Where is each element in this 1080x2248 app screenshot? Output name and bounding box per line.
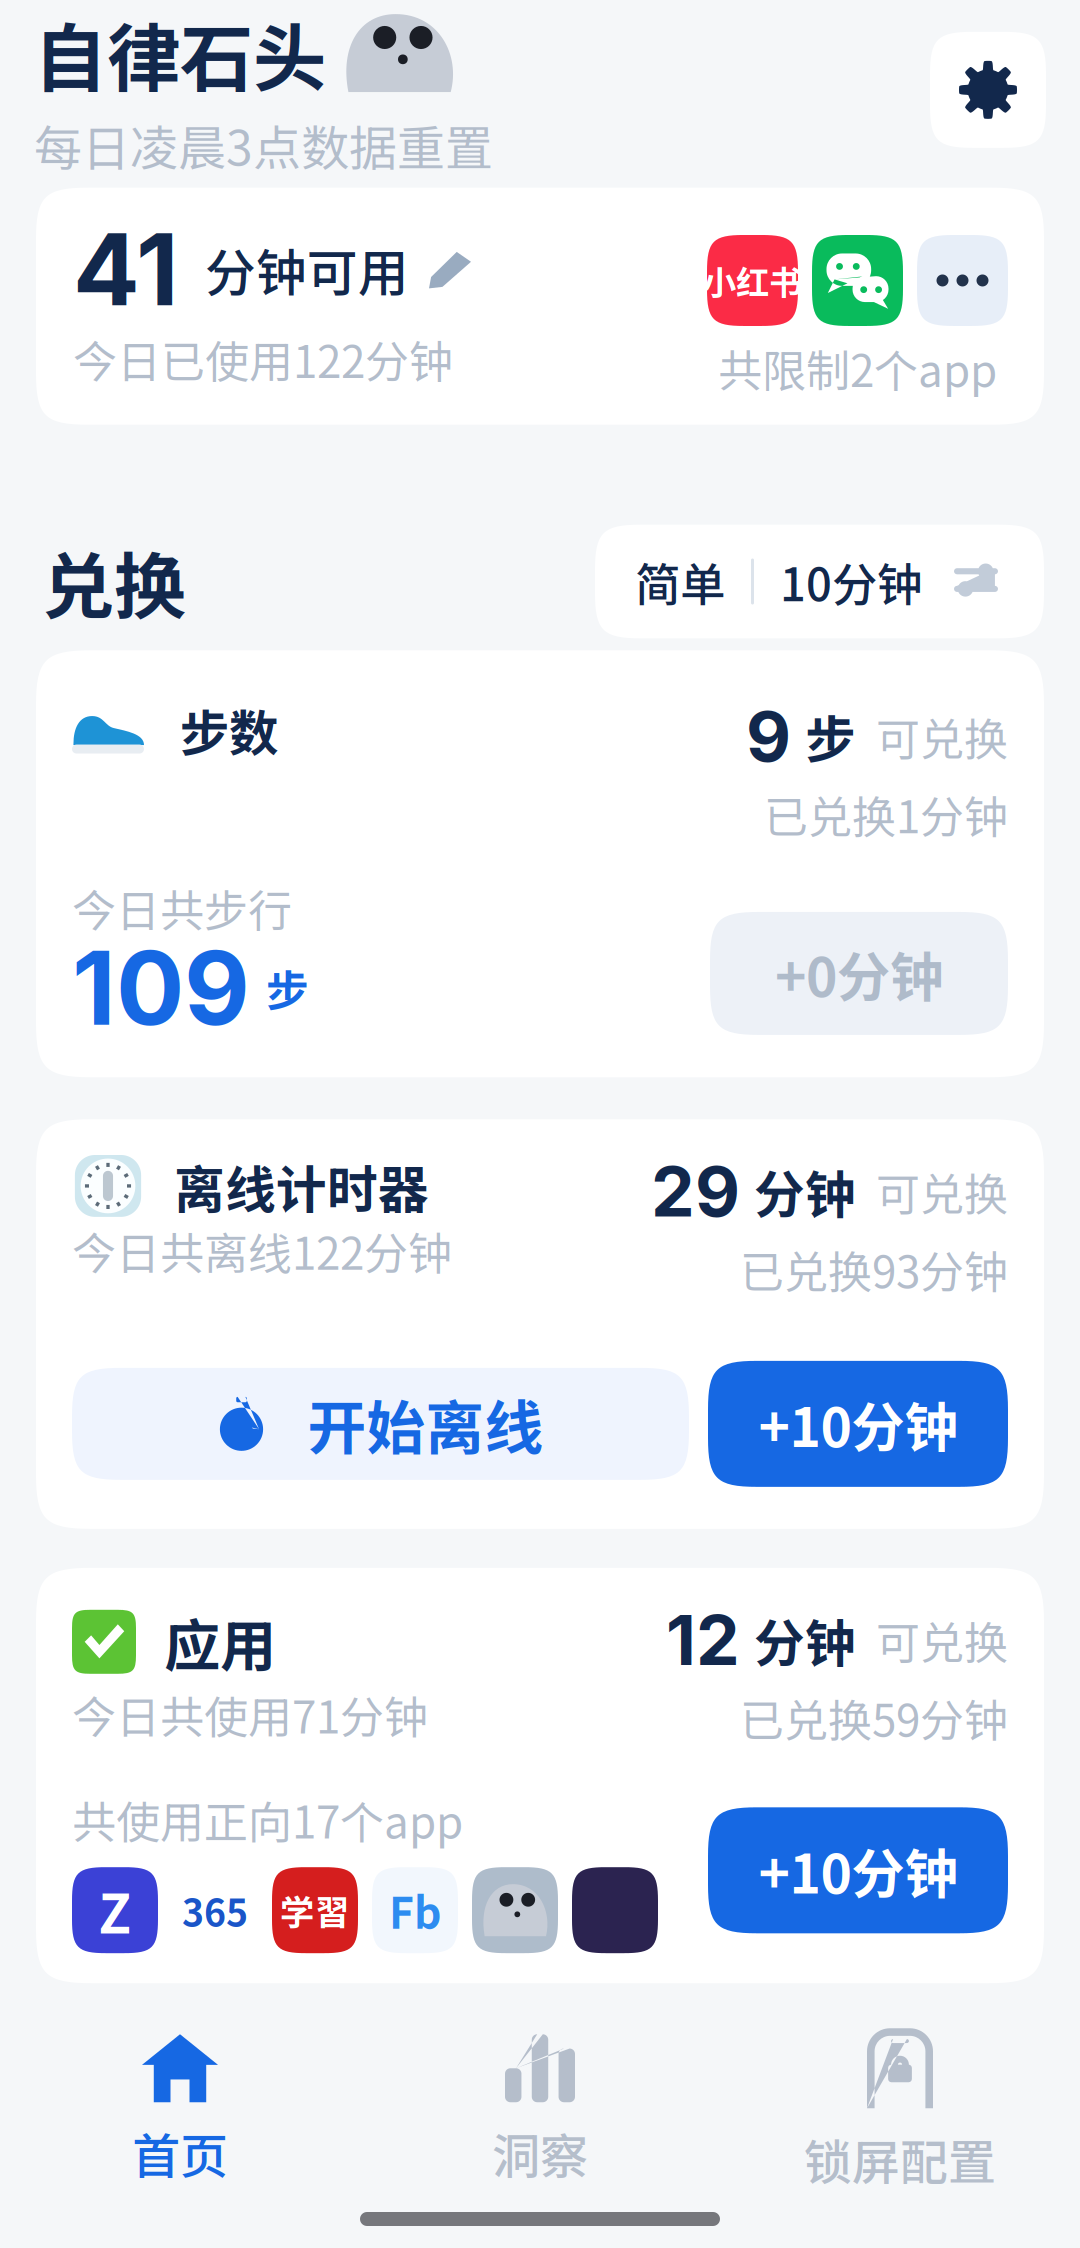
staticText: 今日已使用122分钟 <box>73 327 453 391</box>
staticText: 9 <box>746 694 791 778</box>
staticText: 步 <box>805 700 856 773</box>
staticText: 分钟 <box>754 1603 856 1676</box>
button[interactable]: 开始离线 <box>72 1368 689 1480</box>
staticText: 今日共步行 <box>72 876 292 940</box>
staticText: 109 <box>72 927 250 1049</box>
staticText: 已兑换93分钟 <box>740 1237 1008 1301</box>
staticText: 41 <box>73 210 179 329</box>
staticText: 小红书 <box>703 256 802 305</box>
staticText: 已兑换1分钟 <box>764 782 1008 846</box>
staticText: +10分钟 <box>758 1832 957 1909</box>
staticText: 洞察 <box>492 2118 588 2188</box>
staticText: 首页 <box>132 2118 228 2188</box>
staticText: 共限制2个app <box>718 336 997 400</box>
staticText: Z <box>98 1872 131 1949</box>
staticText: +10分钟 <box>758 1385 957 1462</box>
button[interactable]: 洞察 <box>360 2036 720 2186</box>
staticText: 开始离线 <box>307 1381 543 1466</box>
button[interactable]: 首页 <box>0 2036 360 2186</box>
button[interactable]: +0分钟 <box>710 912 1008 1035</box>
staticText: 可兑换 <box>876 1159 1008 1223</box>
button[interactable]: 锁屏配置 <box>720 2036 1080 2186</box>
button[interactable]: More limited apps <box>917 235 1008 326</box>
staticText: 自律石头 <box>34 0 326 106</box>
staticText: 步 <box>266 957 309 1019</box>
staticText: 365 <box>182 1883 248 1937</box>
staticText: 已兑换59分钟 <box>740 1686 1008 1749</box>
staticText: 共使用正向17个app <box>72 1787 463 1851</box>
button[interactable]: 简单 <box>595 525 1044 638</box>
staticText: 可兑换 <box>876 1608 1008 1672</box>
button[interactable]: +10分钟 <box>708 1361 1008 1487</box>
staticText: 学習 <box>280 1885 350 1935</box>
staticText: +0分钟 <box>775 935 943 1012</box>
staticText: 分钟可用 <box>205 233 409 306</box>
staticText: 今日共使用71分钟 <box>72 1682 428 1746</box>
staticText: 应用 <box>164 1601 276 1682</box>
button[interactable]: Settings <box>930 32 1046 148</box>
staticText: 10分钟 <box>780 549 922 614</box>
staticText: 步数 <box>180 694 278 766</box>
staticText: 锁屏配置 <box>804 2124 996 2194</box>
staticText: 兑换 <box>42 529 186 634</box>
staticText: 分钟 <box>754 1154 856 1228</box>
staticText: 今日共离线122分钟 <box>72 1219 452 1282</box>
staticText: 12 <box>666 1598 740 1682</box>
staticText: 简单 <box>635 549 725 614</box>
staticText: 每日凌晨3点数据重置 <box>34 110 493 180</box>
staticText: Fb <box>389 1879 441 1941</box>
staticText: 29 <box>651 1149 740 1233</box>
staticText: 可兑换 <box>876 704 1008 768</box>
staticText: 离线计时器 <box>174 1149 429 1223</box>
button[interactable]: +10分钟 <box>708 1807 1008 1933</box>
